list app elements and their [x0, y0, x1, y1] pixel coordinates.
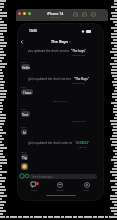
button[interactable]: Sticker — [21, 163, 28, 170]
button[interactable]: Toolbar action 1 — [82, 12, 87, 17]
staticText: iOS 16.1 — [51, 16, 60, 19]
staticText: gh.tv updated the chat's color to — [28, 141, 73, 145]
staticText: Test — [22, 112, 29, 116]
staticText: "The boys" — [71, 49, 86, 53]
staticText: you updated the chat's service — [28, 49, 70, 53]
button[interactable]: Back — [18, 38, 25, 45]
button[interactable]: Send a message... — [29, 174, 97, 179]
staticText: Wed 3:54 PM — [53, 100, 68, 103]
button[interactable]: hi — [21, 129, 27, 135]
staticText: "The Boys" — [74, 77, 89, 81]
staticText: 3:59 PM — [78, 146, 87, 149]
staticText: The Boys — [51, 39, 68, 44]
staticText: > — [69, 40, 71, 44]
button[interactable]: Toolbar action 2 — [91, 12, 96, 17]
button[interactable]: Test — [21, 111, 30, 117]
staticText: Wed 3:52 PM — [72, 54, 86, 57]
staticText: gh.tv — [21, 125, 27, 128]
staticText: Friends — [56, 189, 64, 192]
button[interactable]: Chats — [24, 182, 43, 192]
staticText: Send a message... — [32, 175, 55, 179]
staticText: gh.tv — [21, 150, 27, 153]
staticText: Wed 3:56 PM — [72, 120, 86, 123]
button[interactable]: Tiaaa — [21, 89, 33, 95]
staticText: Hello — [22, 65, 30, 69]
button[interactable]: Hello — [21, 64, 30, 70]
staticText: gh.tv — [21, 85, 27, 88]
button[interactable]: Toolbar action 0 — [73, 12, 78, 17]
staticText: gh.tv updated the chat's service — [28, 77, 72, 81]
staticText: gh.tv — [21, 107, 27, 110]
staticText: "#3FA862" — [75, 141, 90, 145]
button[interactable]: Gallery — [25, 174, 29, 178]
staticText: 10:06 — [29, 29, 37, 33]
button[interactable]: Camera — [20, 174, 24, 178]
button[interactable]: Tig — [21, 154, 28, 160]
button[interactable]: Friends — [50, 182, 69, 192]
staticText: hi — [23, 130, 26, 134]
staticText: iPhone 14 — [47, 11, 64, 16]
staticText: Tiaaa — [23, 90, 32, 94]
staticText: Profile — [83, 189, 90, 192]
staticText: Tig — [22, 155, 27, 159]
staticText: Wed 3:53 PM — [72, 82, 86, 85]
button[interactable]: Profile — [77, 182, 96, 192]
staticText: gh.tv — [21, 60, 27, 63]
staticText: Chats — [31, 189, 37, 192]
